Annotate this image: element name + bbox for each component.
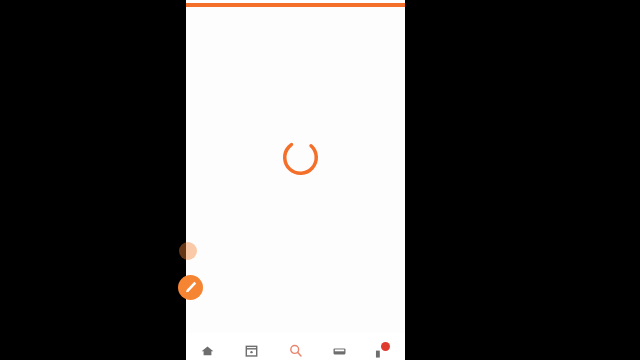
button[interactable]: Notifications: [361, 333, 405, 360]
button[interactable]: Quick add: [179, 242, 197, 260]
button[interactable]: Edit: [178, 275, 203, 300]
button[interactable]: Calendar: [229, 333, 273, 360]
button[interactable]: Home: [186, 333, 229, 360]
button[interactable]: Search: [273, 333, 317, 360]
button[interactable]: Transit: [317, 333, 361, 360]
